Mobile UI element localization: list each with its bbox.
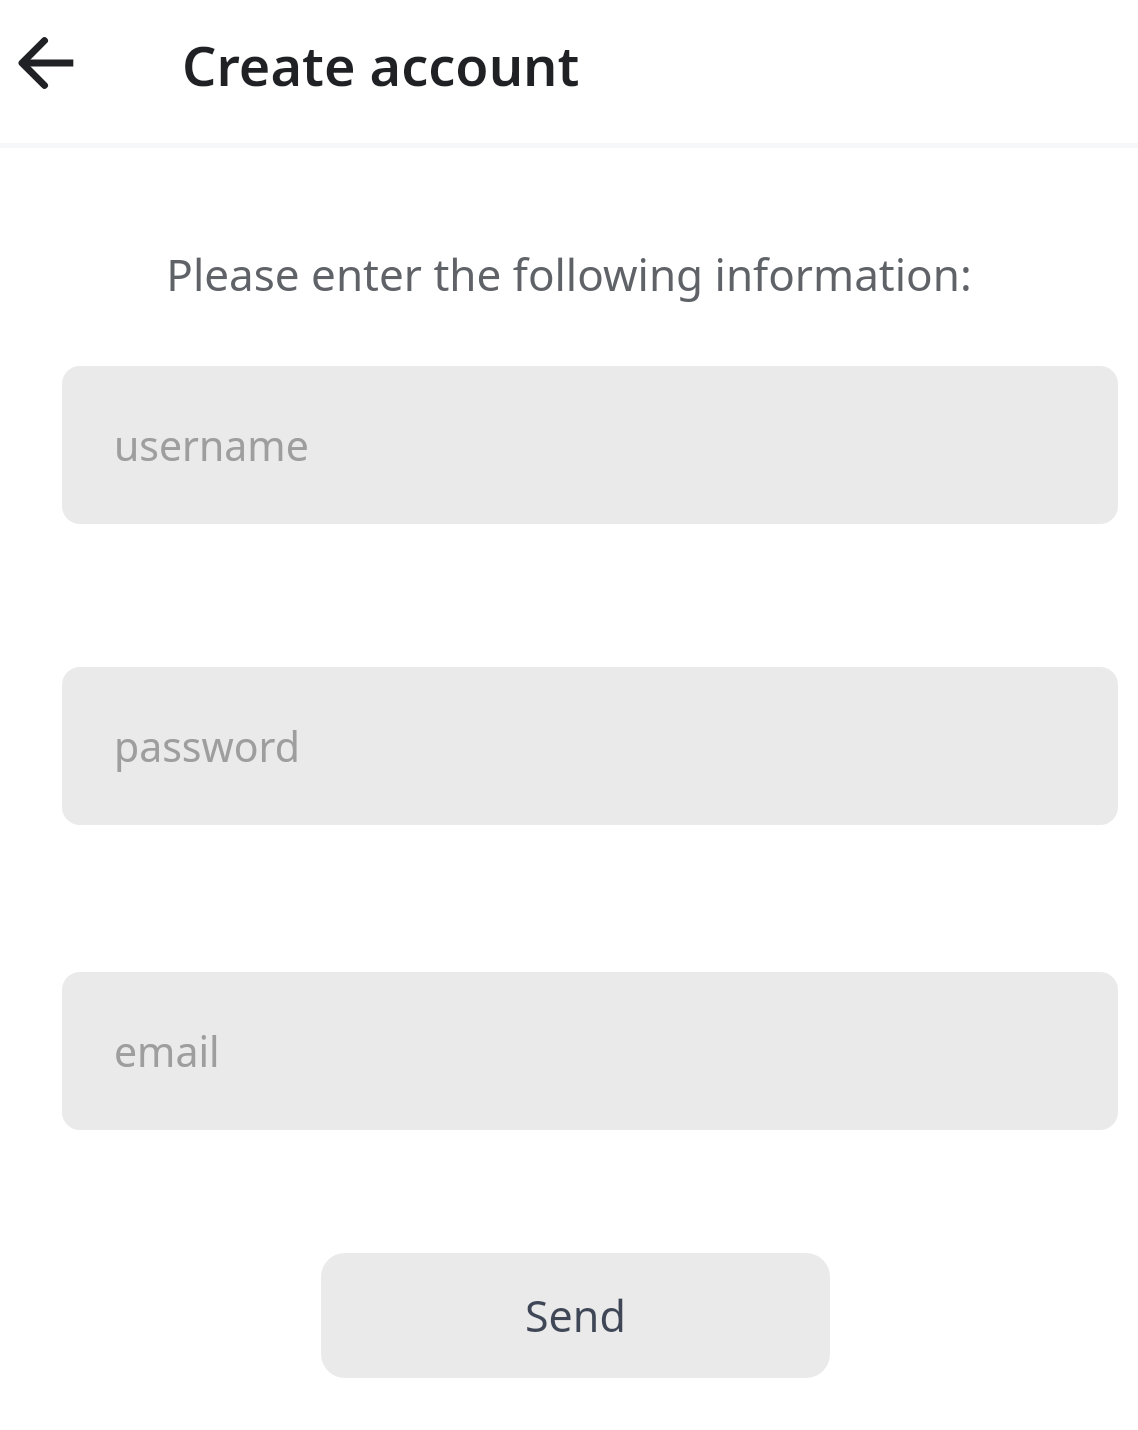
staticText: Create account	[182, 28, 580, 102]
staticText: email	[114, 1023, 220, 1079]
button[interactable]: password	[62, 667, 1118, 825]
staticText: username	[114, 417, 309, 473]
staticText: password	[114, 718, 300, 774]
staticText: Please enter the following information:	[24, 244, 1114, 304]
button[interactable]: Back	[2, 18, 92, 108]
staticText: Send	[525, 1286, 626, 1345]
button[interactable]: Send	[321, 1253, 830, 1378]
button[interactable]: username	[62, 366, 1118, 524]
button[interactable]: email	[62, 972, 1118, 1130]
